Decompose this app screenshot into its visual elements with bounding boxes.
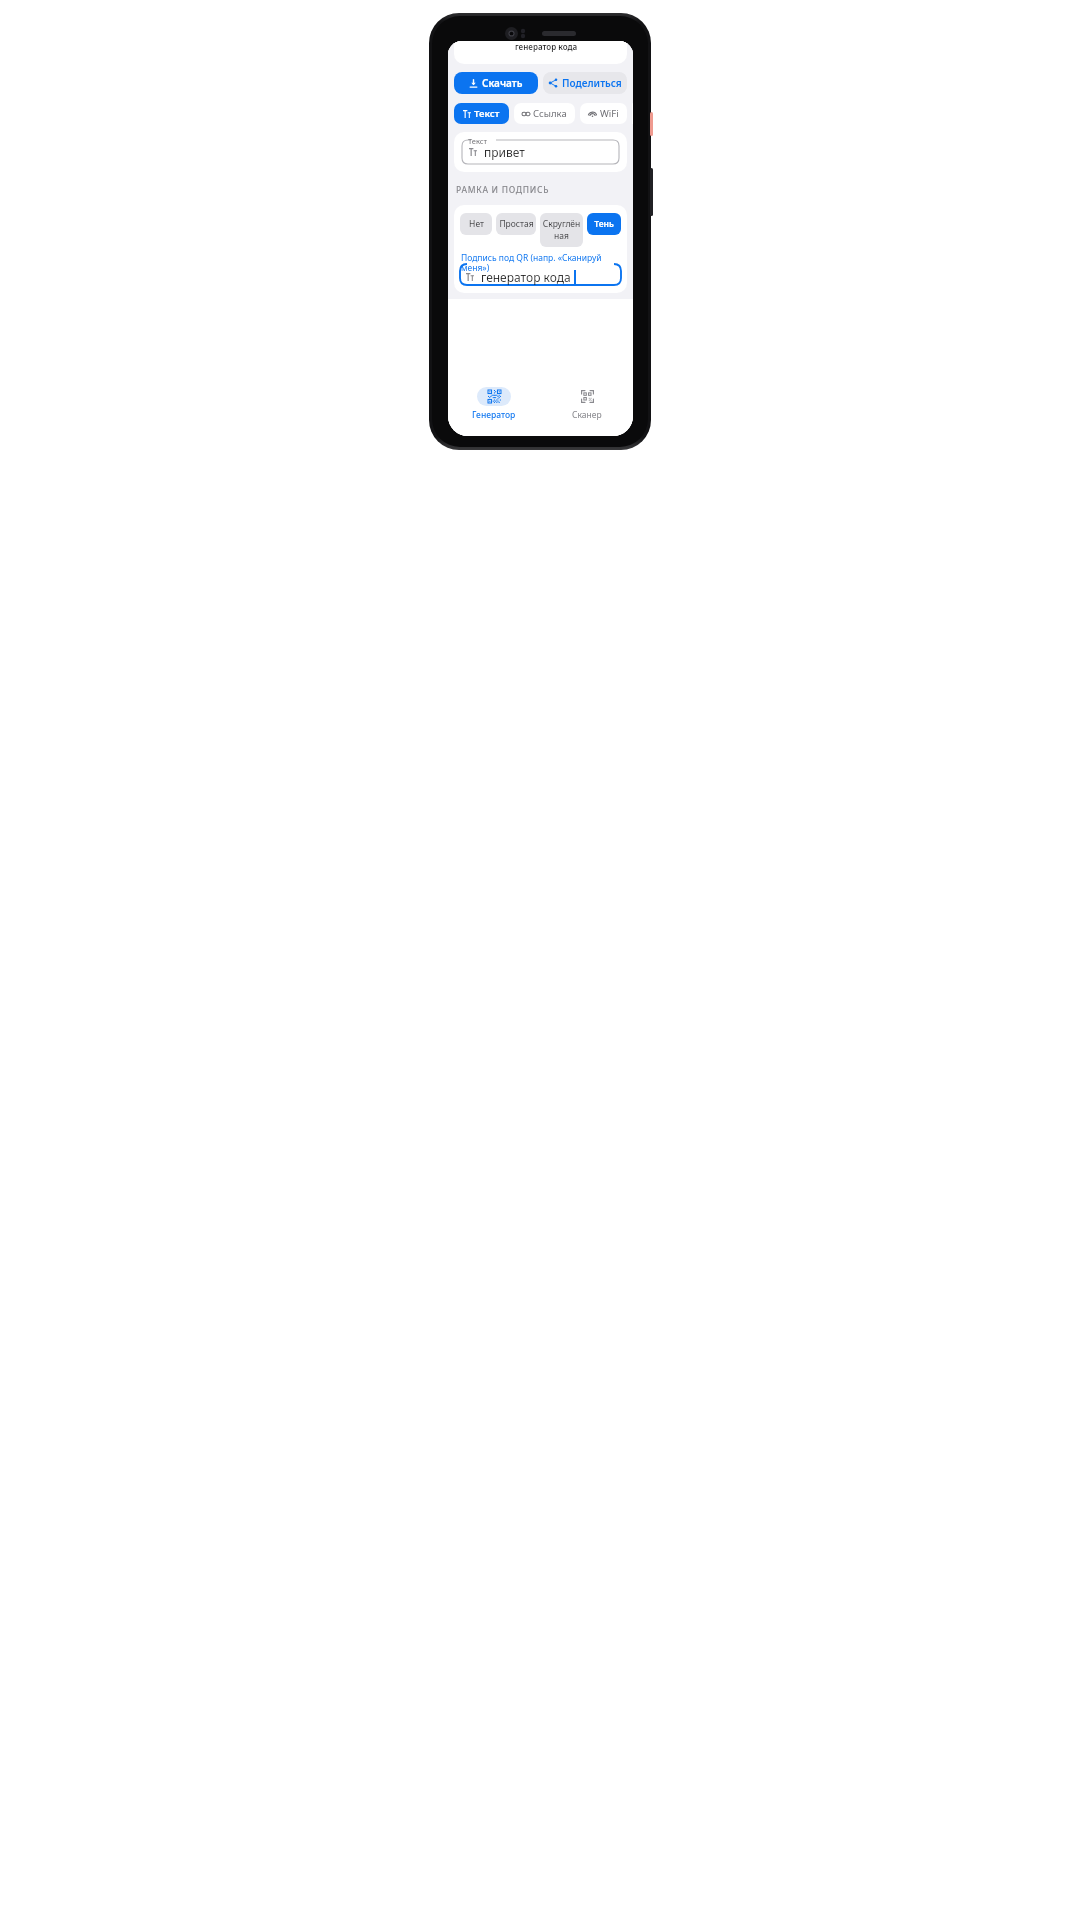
staticText: WiFi — [600, 107, 619, 120]
staticText: генератор кода — [481, 269, 571, 285]
staticText: Ссылка — [533, 107, 567, 120]
button[interactable]: WiFi — [580, 103, 627, 124]
staticText: Простая — [499, 218, 534, 230]
button[interactable]: Нет — [460, 213, 492, 235]
staticText: Сканер — [572, 409, 602, 421]
staticText: Скруглённая — [542, 218, 581, 242]
staticText: Текст — [474, 107, 500, 120]
button[interactable]: Поделиться — [543, 72, 627, 94]
staticText: Скачать — [482, 76, 523, 90]
staticText: РАМКА И ПОДПИСЬ — [456, 184, 550, 196]
button[interactable]: Скачать — [454, 72, 538, 94]
staticText: генератор кода — [515, 41, 578, 52]
button[interactable]: Тень — [587, 213, 621, 235]
staticText: Генератор — [472, 409, 516, 421]
staticText: привет — [484, 144, 525, 160]
button[interactable]: Простая — [496, 213, 536, 235]
button[interactable]: Ссылка — [514, 103, 575, 124]
staticText: Поделиться — [562, 76, 622, 90]
button[interactable]: Сканер — [540, 380, 633, 428]
staticText: Нет — [469, 218, 484, 230]
button[interactable]: Текст — [454, 103, 509, 124]
button[interactable]: Скруглённая — [540, 213, 583, 247]
staticText: Тень — [594, 218, 614, 230]
button[interactable]: Генератор QR — [448, 380, 540, 428]
other: Сканер — [581, 390, 594, 403]
staticText: Текст — [468, 136, 488, 146]
other: Генератор QR — [488, 390, 501, 403]
staticText: Подпись под QR (напр. «Сканируй меня») — [461, 252, 611, 273]
